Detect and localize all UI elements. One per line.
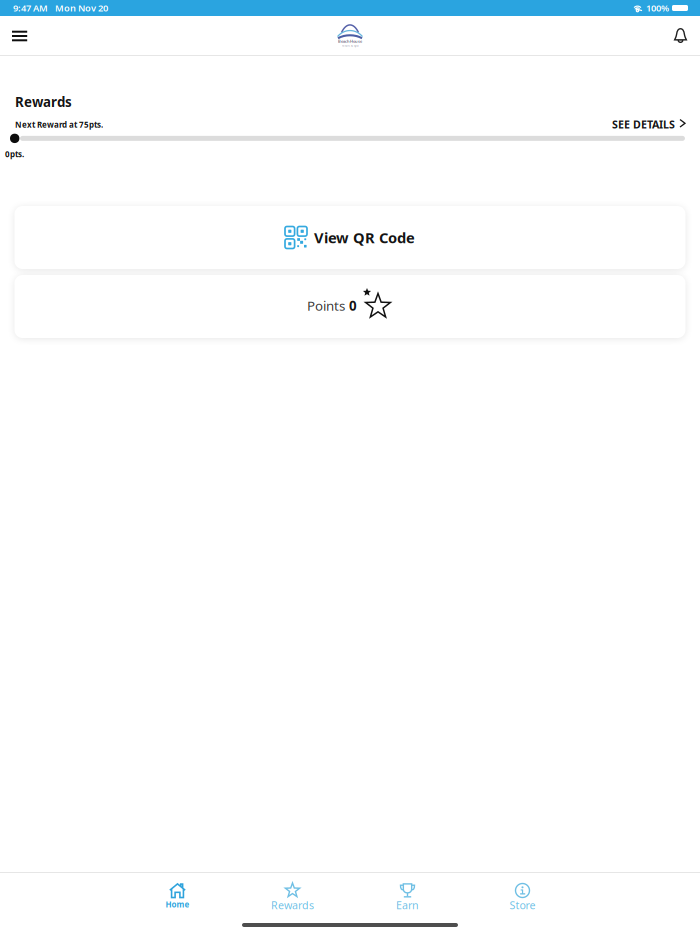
button[interactable]: Rewards [235,880,350,914]
staticText: Rewards [15,93,72,111]
button[interactable]: Store [465,880,580,914]
staticText: Points [307,297,345,314]
staticText: View QR Code [314,228,415,247]
button[interactable]: SEE DETAILS [612,116,685,130]
staticText: 0 [349,297,357,314]
button[interactable]: Menu [0,16,52,56]
staticText: Earn [396,898,419,912]
staticText: 0pts. [5,149,24,159]
staticText: BeachHouse [338,39,362,44]
staticText: Rewards [271,898,314,912]
button[interactable]: View QR Code [14,206,685,269]
button[interactable]: Notifications [647,16,700,56]
staticText: Mon Nov 20 [55,2,108,14]
staticText: SEE DETAILS [612,117,675,131]
staticText: resort & spa [342,44,358,47]
staticText: Store [509,898,535,912]
button[interactable]: Points [14,275,685,338]
button[interactable]: Home [120,880,235,914]
staticText: Home [165,899,189,910]
staticText: 9:47 AM [13,2,48,14]
staticText: Next Reward at 75pts. [15,119,103,130]
button[interactable]: Earn [350,880,465,914]
staticText: 100% [646,2,669,14]
